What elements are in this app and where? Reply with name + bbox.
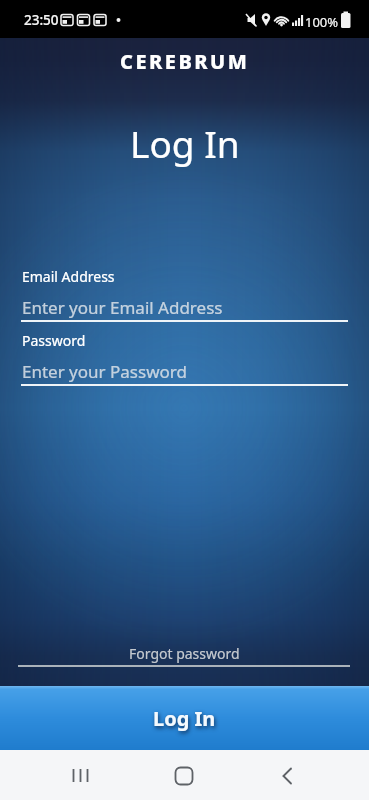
staticText: Email Address bbox=[22, 267, 115, 286]
staticText: Password bbox=[22, 331, 86, 350]
button[interactable] bbox=[159, 755, 209, 795]
staticText: 23:50 bbox=[24, 11, 59, 29]
staticText: Enter your Password bbox=[22, 360, 187, 383]
staticText: 100% bbox=[305, 13, 339, 31]
button[interactable]: Enter your Password bbox=[21, 357, 348, 386]
button[interactable]: Log In bbox=[0, 686, 369, 750]
staticText: CEREBRUM bbox=[120, 48, 250, 75]
staticText: Enter your Email Address bbox=[22, 296, 223, 319]
button[interactable]: Forgot password bbox=[18, 644, 350, 667]
button[interactable]: Enter your Email Address bbox=[21, 293, 348, 322]
staticText: Log In bbox=[130, 118, 240, 168]
button[interactable] bbox=[55, 755, 105, 795]
staticText: Forgot password bbox=[129, 644, 240, 663]
staticText: Log In bbox=[153, 705, 216, 732]
button[interactable] bbox=[263, 755, 313, 795]
